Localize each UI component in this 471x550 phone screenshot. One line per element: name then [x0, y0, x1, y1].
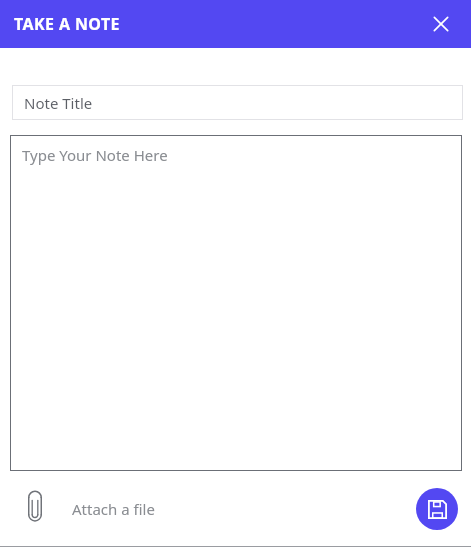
staticText: TAKE A NOTE	[14, 13, 120, 35]
staticText: Attach a file	[72, 499, 155, 519]
staticText: Type Your Note Here	[22, 145, 168, 165]
button[interactable]: Attach a file	[20, 494, 155, 524]
button[interactable]: Note Title	[12, 85, 463, 120]
staticText: Note Title	[24, 93, 93, 113]
button[interactable]: Type Your Note Here	[10, 135, 462, 471]
button[interactable]: Close	[423, 6, 459, 42]
button[interactable]: Save	[416, 488, 458, 530]
